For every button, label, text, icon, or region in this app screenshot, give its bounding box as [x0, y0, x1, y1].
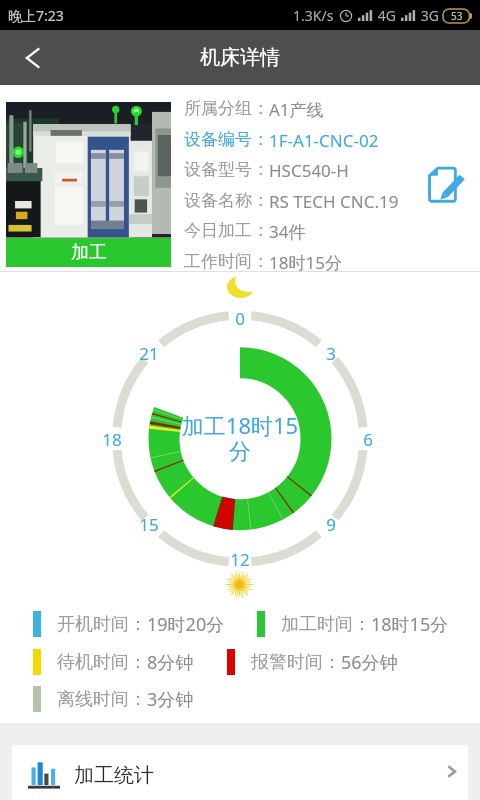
staticText: 今日加工： [184, 220, 269, 241]
staticText: 18时15分 [371, 612, 449, 637]
staticText: 工作时间： [184, 251, 269, 272]
button[interactable]: 加工统计 [12, 745, 468, 800]
staticText: 加工时间： [281, 613, 371, 636]
staticText: 3分钟 [147, 687, 194, 712]
staticText: 设备编号： [184, 129, 269, 150]
staticText: 6 [363, 428, 373, 451]
staticText: 1.3K/s [293, 6, 334, 25]
staticText: 8分钟 [147, 650, 194, 675]
staticText: 56分钟 [341, 650, 398, 675]
staticText: 所属分组： [184, 98, 269, 119]
staticText: 15 [139, 513, 159, 536]
staticText: 12 [230, 548, 250, 571]
staticText: 加工 [71, 241, 107, 264]
staticText: 晚上7:23 [8, 6, 64, 25]
staticText: 18 [102, 428, 122, 451]
staticText: A1产线 [269, 98, 324, 121]
staticText: 报警时间： [251, 651, 341, 674]
staticText: 开机时间： [57, 613, 147, 636]
staticText: 1F-A1-CNC-02 [269, 129, 379, 152]
button[interactable]: 加工时间： [257, 611, 449, 637]
staticText: 9 [326, 513, 336, 536]
button[interactable]: 待机时间： [33, 649, 194, 675]
button[interactable]: Back [0, 30, 55, 85]
staticText: 离线时间： [57, 688, 147, 711]
staticText: 34件 [269, 220, 306, 243]
button[interactable]: 加工 [6, 238, 171, 267]
staticText: 加工18时15分 [181, 410, 299, 466]
staticText: 4G [374, 6, 396, 25]
staticText: 设备名称： [184, 190, 269, 211]
staticText: 19时20分 [147, 612, 225, 637]
staticText: 18时15分 [269, 251, 342, 274]
button[interactable]: 离线时间： [33, 686, 194, 712]
staticText: 加工统计 [74, 763, 154, 788]
staticText: 3G [417, 6, 439, 25]
staticText: 设备型号： [184, 159, 269, 180]
staticText: 待机时间： [57, 651, 147, 674]
staticText: 53 [451, 9, 463, 23]
button[interactable]: Edit [428, 166, 466, 202]
staticText: 0 [235, 307, 245, 330]
staticText: 21 [139, 342, 159, 365]
staticText: 机床详情 [200, 45, 280, 70]
staticText: 3 [326, 342, 336, 365]
staticText: HSC540-H [269, 159, 349, 182]
button[interactable]: 开机时间： [33, 611, 225, 637]
button[interactable]: 报警时间： [227, 649, 398, 675]
staticText: RS TECH CNC.19 [269, 190, 399, 213]
